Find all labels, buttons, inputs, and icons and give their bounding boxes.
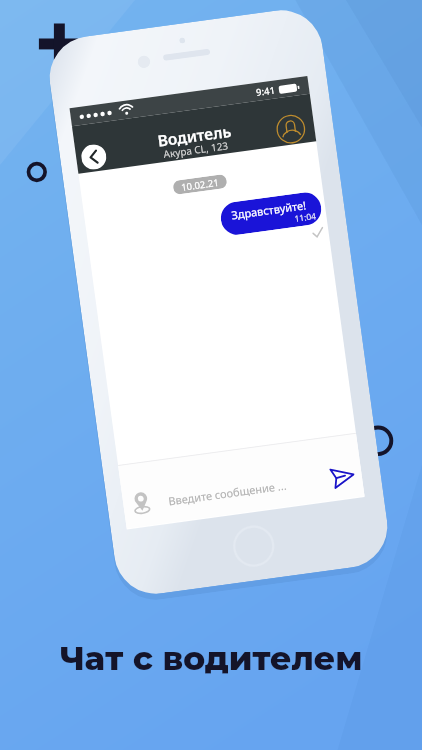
staticText: Водитель xyxy=(156,120,232,151)
button[interactable]: Profile xyxy=(274,113,307,145)
button[interactable]: Send xyxy=(328,463,356,490)
staticText: Здравствуйте! xyxy=(230,197,308,222)
staticText: Введите сообщение ... xyxy=(167,478,287,508)
staticText: Чат с водителем xyxy=(60,638,363,678)
staticText: 9:41 xyxy=(255,83,276,99)
staticText: Акура CL, 123 xyxy=(163,138,230,161)
staticText: 10.02.21 xyxy=(180,176,220,194)
button[interactable]: Back xyxy=(80,143,108,171)
staticText: 11:04 xyxy=(294,210,317,225)
